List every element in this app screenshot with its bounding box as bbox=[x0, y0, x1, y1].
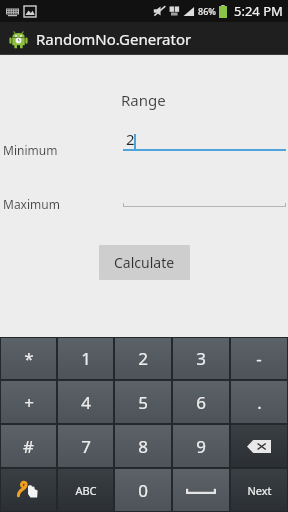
staticText: Calculate bbox=[114, 253, 175, 272]
staticText: 2 bbox=[138, 347, 148, 370]
staticText: # bbox=[23, 435, 34, 458]
staticText: - bbox=[256, 347, 262, 370]
button[interactable]: Backspace bbox=[231, 425, 287, 467]
staticText: 8 bbox=[138, 435, 148, 458]
button[interactable]: 6 bbox=[173, 381, 229, 423]
staticText: 3 bbox=[196, 347, 206, 370]
button[interactable]: - bbox=[231, 338, 287, 379]
button[interactable]: + bbox=[1, 381, 56, 423]
staticText: Minimum bbox=[3, 142, 58, 158]
button[interactable]: . bbox=[231, 381, 287, 423]
button[interactable]: # bbox=[1, 425, 56, 467]
staticText: Next bbox=[247, 483, 272, 498]
button[interactable]: ABC bbox=[58, 469, 113, 511]
button[interactable] bbox=[123, 183, 286, 207]
staticText: 0 bbox=[138, 479, 148, 502]
staticText: 5 bbox=[138, 391, 148, 414]
button[interactable]: 2 bbox=[123, 125, 286, 151]
button[interactable]: 2 bbox=[115, 338, 171, 379]
button[interactable]: 0 bbox=[115, 469, 171, 511]
staticText: 1 bbox=[81, 347, 91, 370]
staticText: 5:24 PM bbox=[234, 2, 283, 20]
staticText: + bbox=[24, 391, 34, 414]
button[interactable]: 8 bbox=[115, 425, 171, 467]
staticText: 7 bbox=[81, 435, 91, 458]
button[interactable]: * bbox=[1, 338, 56, 379]
button[interactable]: 9 bbox=[173, 425, 229, 467]
button[interactable]: Next bbox=[231, 469, 287, 511]
button[interactable]: 4 bbox=[58, 381, 113, 423]
staticText: ABC bbox=[75, 483, 97, 498]
button[interactable]: 7 bbox=[58, 425, 113, 467]
staticText: * bbox=[24, 347, 34, 370]
staticText: 2 bbox=[126, 129, 135, 149]
button[interactable]: Calculate bbox=[99, 245, 190, 280]
staticText: . bbox=[257, 391, 262, 414]
staticText: RandomNo.Generator bbox=[36, 29, 192, 49]
button[interactable]: Space bbox=[173, 469, 229, 511]
staticText: 86% bbox=[198, 5, 216, 17]
button[interactable]: 5 bbox=[115, 381, 171, 423]
button[interactable]: Change input method bbox=[1, 469, 56, 511]
staticText: Range bbox=[121, 90, 166, 110]
button[interactable]: 1 bbox=[58, 338, 113, 379]
staticText: 9 bbox=[196, 435, 206, 458]
staticText: 4 bbox=[81, 391, 91, 414]
staticText: 6 bbox=[196, 391, 206, 414]
staticText: Maximum bbox=[3, 196, 60, 212]
button[interactable]: 3 bbox=[173, 338, 229, 379]
